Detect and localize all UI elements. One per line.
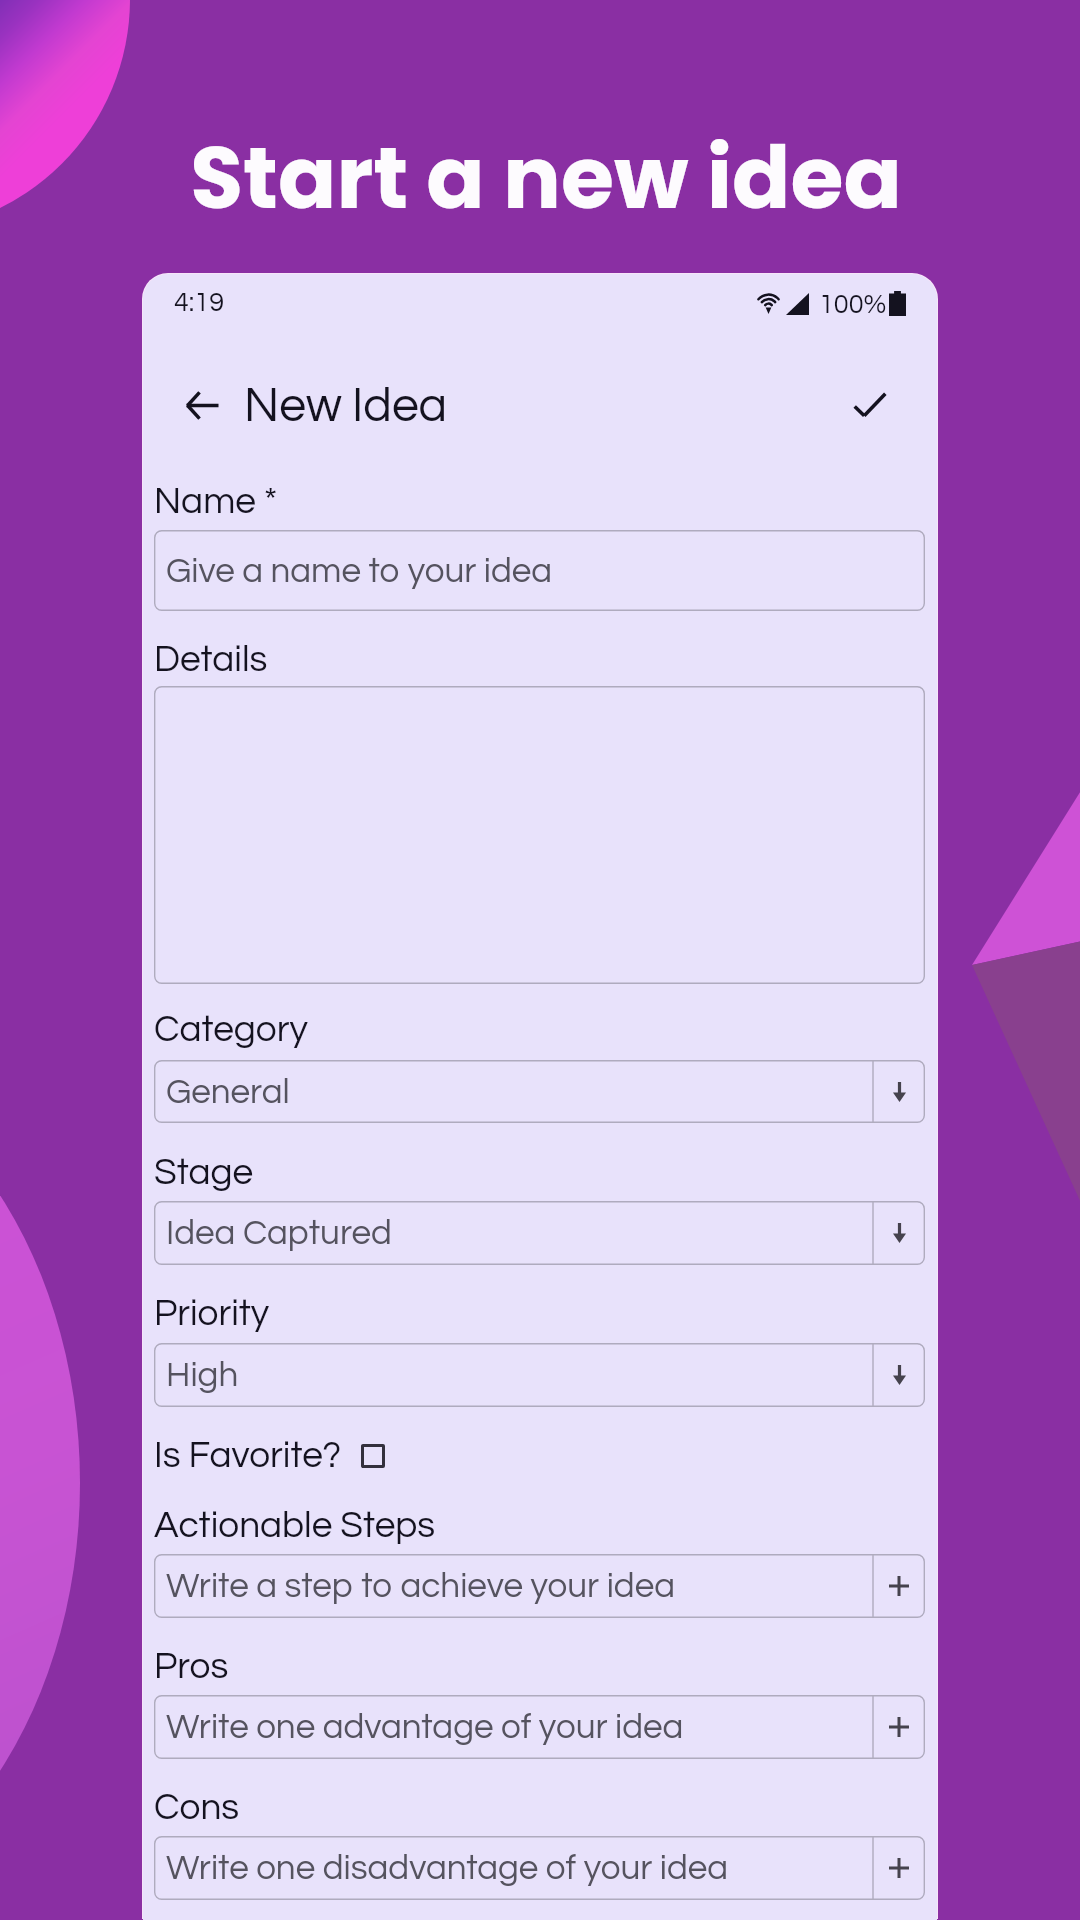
staticText: Give a name to your idea: [166, 553, 553, 589]
staticText: Is Favorite?: [154, 1437, 342, 1475]
button[interactable]: Idea Captured: [154, 1201, 925, 1265]
staticText: Priority: [154, 1295, 270, 1333]
button[interactable]: Show options: [873, 1343, 925, 1407]
other: Mobile signal: [786, 293, 809, 315]
staticText: 100%: [819, 291, 887, 319]
staticText: High: [166, 1357, 239, 1393]
staticText: General: [166, 1074, 290, 1110]
staticText: Write one advantage of your idea: [166, 1709, 684, 1745]
button[interactable]: Show options: [873, 1060, 925, 1123]
button[interactable]: Give a name to your idea: [154, 530, 925, 611]
button[interactable]: Write one disadvantage of your idea: [154, 1836, 925, 1900]
button[interactable]: [154, 686, 925, 984]
staticText: Idea Captured: [166, 1215, 392, 1251]
other: Battery full: [889, 291, 906, 316]
button[interactable]: Save: [846, 381, 894, 429]
button[interactable]: Is Favorite?: [154, 1437, 395, 1475]
button[interactable]: High: [154, 1343, 925, 1407]
staticText: Write one disadvantage of your idea: [166, 1850, 729, 1886]
staticText: Name *: [154, 483, 278, 521]
staticText: Category: [154, 1011, 308, 1049]
staticText: New Idea: [244, 382, 448, 431]
staticText: 4:19: [174, 289, 225, 317]
staticText: Stage: [154, 1154, 254, 1192]
button[interactable]: Write a step to achieve your idea: [154, 1554, 925, 1618]
staticText: Pros: [154, 1648, 229, 1686]
staticText: Cons: [154, 1789, 240, 1827]
button[interactable]: Add item: [873, 1695, 925, 1759]
other: Wi-Fi: [756, 294, 781, 314]
button[interactable]: Add item: [873, 1554, 925, 1618]
button[interactable]: Back: [180, 383, 224, 427]
button[interactable]: Add item: [873, 1836, 925, 1900]
staticText: Details: [154, 641, 268, 679]
button[interactable]: Write one advantage of your idea: [154, 1695, 925, 1759]
button[interactable]: Show options: [873, 1201, 925, 1265]
staticText: Actionable Steps: [154, 1507, 436, 1545]
staticText: Start a new idea: [6, 118, 1080, 238]
staticText: Write a step to achieve your idea: [166, 1568, 675, 1604]
button[interactable]: General: [154, 1060, 925, 1123]
